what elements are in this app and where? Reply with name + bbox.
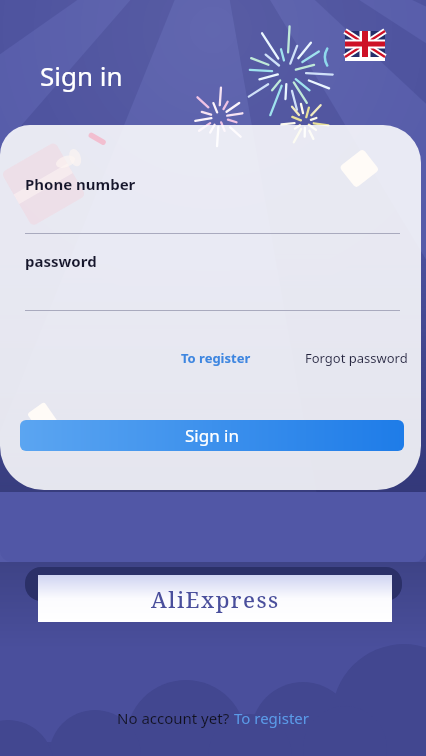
staticText: AliExpress [151,584,280,614]
button[interactable] [25,247,400,311]
staticText: Forgot password [305,349,408,367]
staticText: Sign in [185,424,239,447]
staticText: Sign in [40,58,123,93]
staticText: To register [181,349,251,367]
button[interactable]: Sign in [20,420,404,451]
button[interactable]: To register [171,339,261,377]
staticText: Phone number [25,174,136,194]
button[interactable] [25,170,400,234]
staticText: To register [234,708,309,728]
button[interactable] [345,31,385,61]
staticText: No account yet? [117,708,234,728]
staticText: password [25,251,97,271]
button[interactable]: To register [234,708,309,728]
button[interactable]: Forgot password [297,341,416,375]
